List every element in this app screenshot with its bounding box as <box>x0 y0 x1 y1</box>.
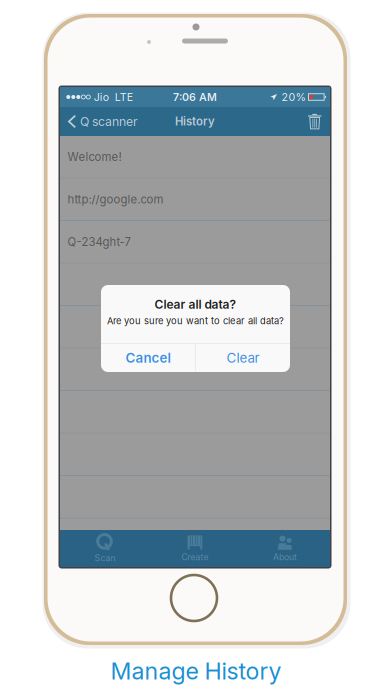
staticText: Create <box>181 552 208 562</box>
staticText: Clear <box>226 350 259 366</box>
staticText: Are you sure you want to clear all data? <box>107 315 284 326</box>
staticText: Scan <box>94 553 115 563</box>
staticText: http://google.com <box>67 192 163 206</box>
staticText: 20% <box>281 90 305 103</box>
staticText: Q scanner <box>80 114 138 129</box>
staticText: Jio <box>94 90 109 103</box>
button[interactable]: Clear all data <box>300 107 330 136</box>
staticText: Welcome! <box>67 150 121 164</box>
button[interactable] <box>60 348 330 391</box>
button[interactable]: Q-234ght-7 <box>60 221 330 263</box>
staticText: About <box>273 552 297 562</box>
button[interactable]: Q scanner <box>60 107 144 136</box>
staticText: LTE <box>115 90 133 103</box>
staticText: Cancel <box>126 350 171 366</box>
button[interactable] <box>60 433 330 476</box>
staticText: Q-234ght-7 <box>67 235 130 249</box>
staticText: 7:06 AM <box>173 90 217 103</box>
staticText: History <box>175 115 215 128</box>
button[interactable]: Welcome! <box>60 136 330 178</box>
button[interactable]: http://google.com <box>60 178 330 221</box>
button[interactable] <box>60 306 330 348</box>
button[interactable]: Clear <box>196 344 290 372</box>
button[interactable]: About <box>240 530 330 567</box>
button[interactable]: Scan <box>60 530 150 567</box>
button[interactable]: Create <box>150 530 240 567</box>
button[interactable]: Cancel <box>101 344 195 372</box>
button[interactable] <box>60 263 330 306</box>
staticText: Clear all data? <box>154 297 236 312</box>
staticText: Manage History <box>110 657 281 685</box>
